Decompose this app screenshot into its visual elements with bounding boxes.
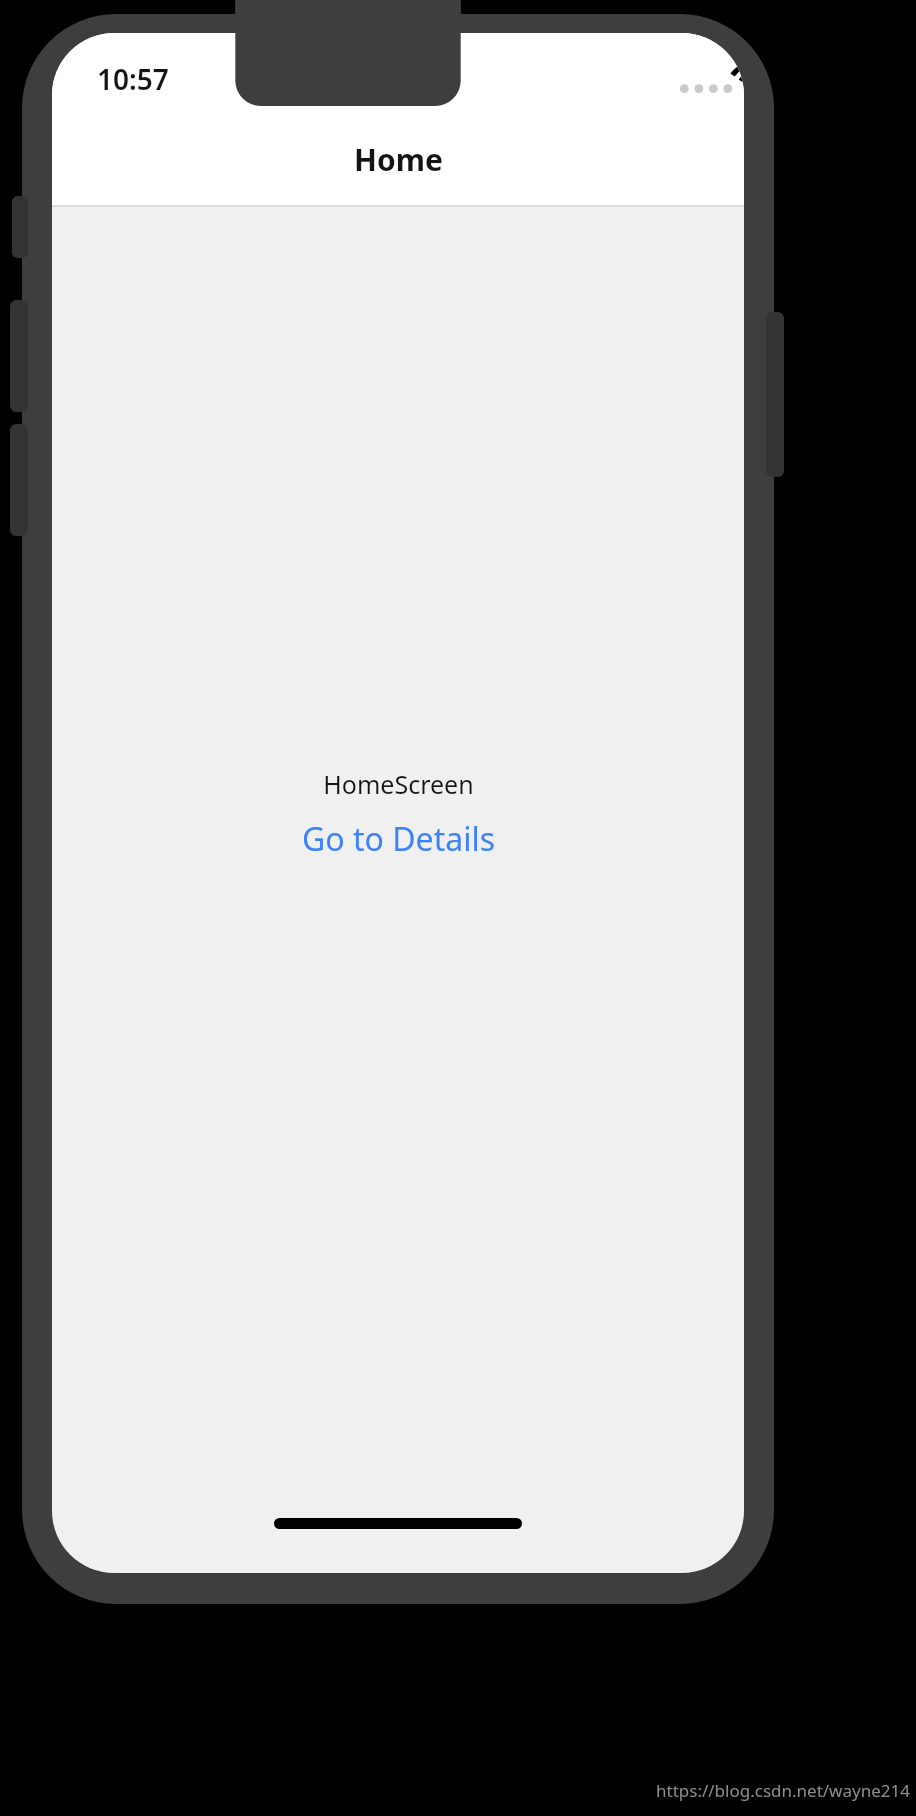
staticText: https://blog.csdn.net/wayne214 bbox=[656, 1779, 910, 1802]
button[interactable]: Hardware button bbox=[12, 196, 28, 258]
staticText: Home bbox=[354, 139, 443, 180]
staticText: HomeScreen bbox=[323, 767, 474, 801]
staticText: 10:57 bbox=[97, 60, 169, 98]
staticText: Go to Details bbox=[302, 817, 495, 861]
button[interactable]: Hardware button bbox=[10, 424, 28, 536]
button[interactable]: Hardware button bbox=[10, 300, 28, 412]
button[interactable]: Go to Details bbox=[292, 815, 505, 863]
button[interactable]: Hardware button bbox=[766, 312, 784, 477]
